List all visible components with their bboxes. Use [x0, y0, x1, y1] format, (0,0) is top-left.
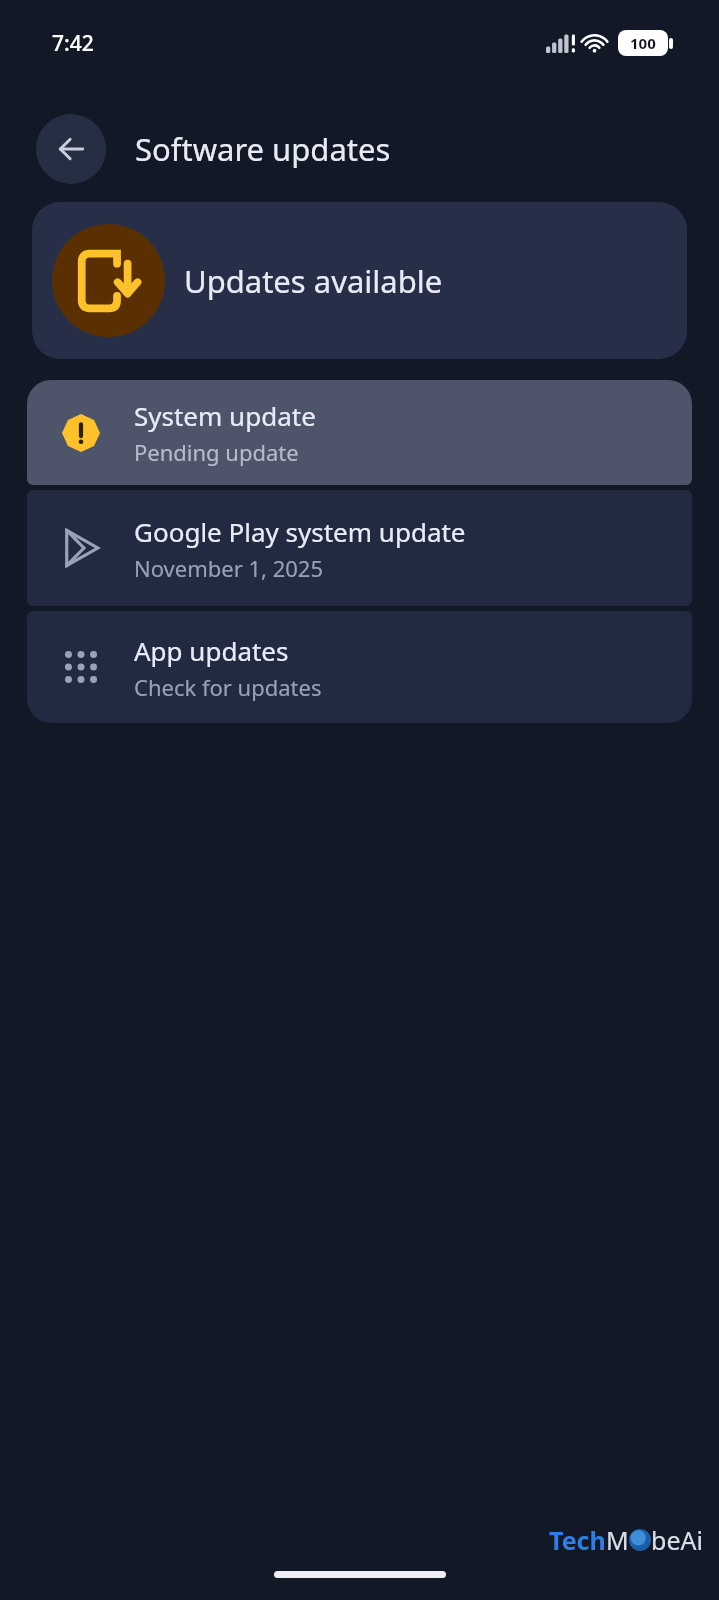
staticText: November 1, 2025	[134, 553, 324, 583]
staticText: App updates	[134, 633, 289, 668]
staticText: M	[606, 1523, 629, 1557]
staticText: 100	[630, 33, 656, 53]
staticText: System update	[134, 398, 316, 433]
button[interactable]: Google Play system update	[27, 490, 692, 606]
staticText: Check for updates	[134, 672, 322, 702]
button[interactable]: Back	[36, 114, 106, 184]
staticText: Software updates	[135, 128, 391, 170]
staticText: Tech	[549, 1523, 606, 1557]
button[interactable]: Updates available	[32, 202, 687, 359]
staticText: 7:42	[52, 29, 94, 58]
button[interactable]: App updates	[27, 611, 692, 723]
button[interactable]: System update	[27, 380, 692, 485]
staticText: Updates available	[184, 260, 443, 302]
staticText: beAi	[651, 1523, 703, 1557]
staticText: Pending update	[134, 437, 299, 467]
staticText: Google Play system update	[134, 514, 466, 549]
